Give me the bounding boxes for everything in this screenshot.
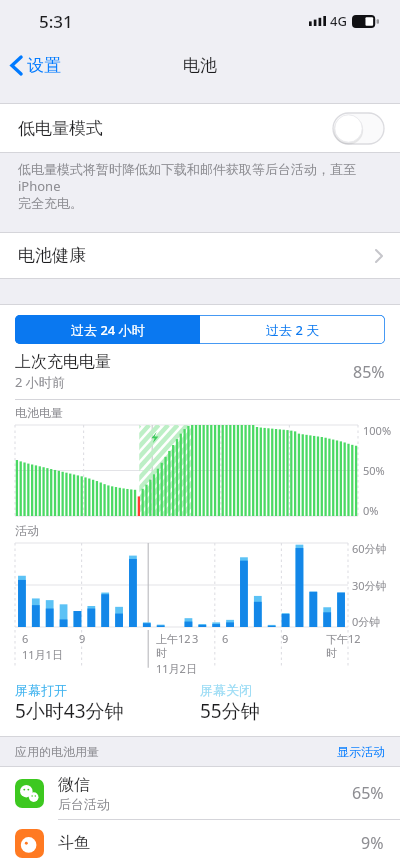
button[interactable]: 微信 <box>0 767 400 819</box>
staticText: 9 <box>79 631 86 646</box>
staticText: 0% <box>363 503 379 518</box>
staticText: 完全充电。 <box>18 195 83 211</box>
button[interactable]: 低电量模式 <box>0 104 400 152</box>
button[interactable]: 设置 <box>0 48 73 83</box>
staticText: 0分钟 <box>352 614 381 629</box>
staticText: 电池 <box>183 55 217 76</box>
staticText: 85% <box>353 361 385 383</box>
staticText: 6 <box>222 631 229 646</box>
staticText: 下午12 <box>326 631 361 646</box>
button[interactable]: 电池健康 <box>0 233 400 278</box>
button[interactable]: 显示活动 <box>337 744 385 759</box>
staticText: 活动 <box>15 523 39 538</box>
staticText: 30分钟 <box>352 578 387 593</box>
staticText: 9 <box>282 631 289 646</box>
staticText: 11月1日 <box>22 647 63 662</box>
staticText: 4G <box>330 12 347 30</box>
button[interactable]: 过去 2 天 <box>200 315 385 344</box>
staticText: 设置 <box>27 55 61 76</box>
staticText: 电池电量 <box>15 405 63 420</box>
staticText: 65% <box>352 782 384 804</box>
staticText: 过去 24 小时 <box>71 321 145 339</box>
staticText: 后台活动 <box>58 796 110 812</box>
staticText: 11月2日 <box>156 661 197 676</box>
staticText: 5小时43分钟 <box>15 698 124 724</box>
staticText: 9% <box>361 832 384 854</box>
staticText: 显示活动 <box>337 744 385 759</box>
staticText: 应用的电池用量 <box>15 744 337 759</box>
staticText: 3 <box>192 631 199 646</box>
staticText: 5:31 <box>39 10 73 33</box>
staticText: 2 小时前 <box>15 373 65 391</box>
staticText: 6 <box>22 631 29 646</box>
staticText: 上午12 <box>156 631 191 646</box>
staticText: 50% <box>363 463 385 478</box>
staticText: 屏幕关闭 <box>200 682 252 698</box>
staticText: 上次充电电量 <box>15 352 111 372</box>
staticText: 斗鱼 <box>58 833 90 853</box>
staticText: 电池健康 <box>18 245 375 266</box>
staticText: 微信 <box>58 775 90 795</box>
staticText: 时 <box>156 646 167 660</box>
button[interactable]: 斗鱼 <box>0 820 400 866</box>
button[interactable]: 低电量模式 <box>333 113 384 144</box>
staticText: 低电量模式 <box>18 118 333 139</box>
staticText: 过去 2 天 <box>266 321 320 339</box>
staticText: 时 <box>326 646 337 660</box>
staticText: 60分钟 <box>352 541 387 556</box>
staticText: 屏幕打开 <box>15 682 67 698</box>
staticText: 55分钟 <box>200 698 260 724</box>
staticText: 低电量模式将暂时降低如下载和邮件获取等后台活动，直至 iPhone <box>18 160 386 195</box>
button[interactable]: 过去 24 小时 <box>15 315 200 344</box>
staticText: 100% <box>363 423 392 438</box>
